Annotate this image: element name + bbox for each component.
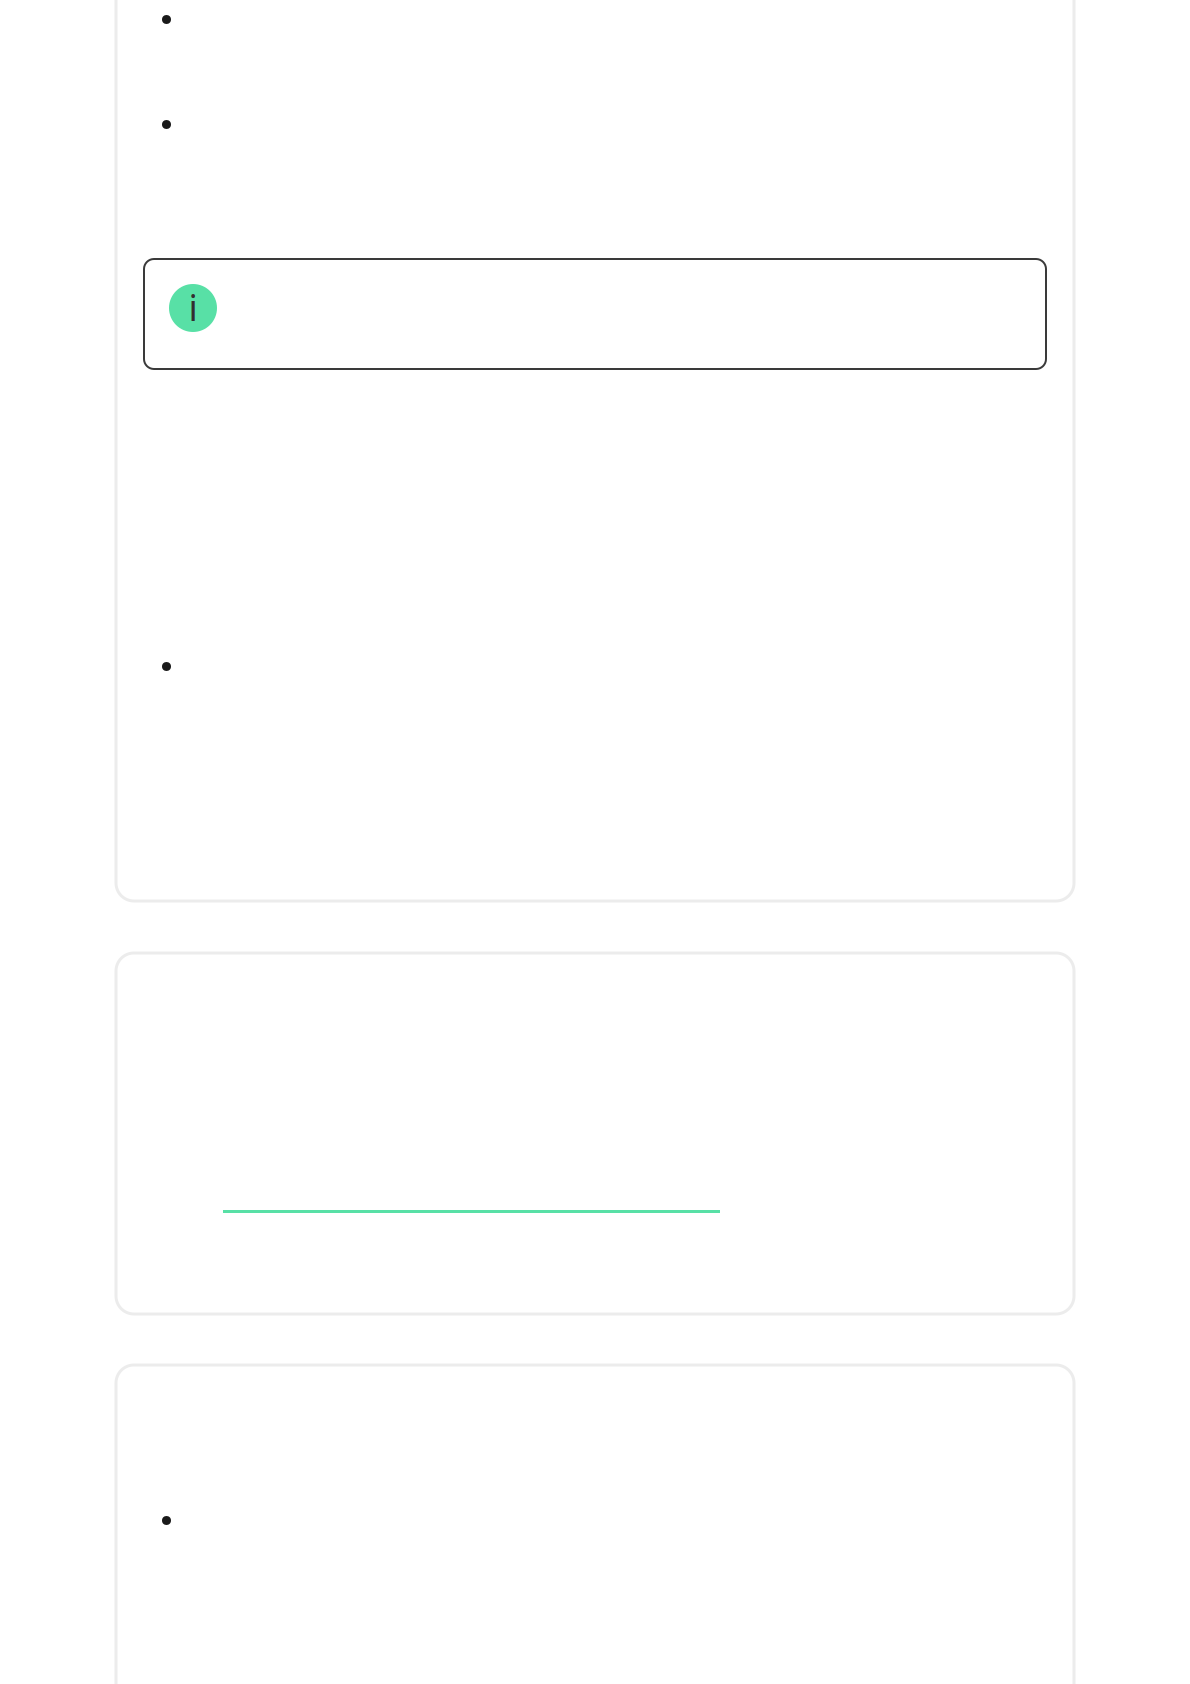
staticText: Learn more about this step <box>223 1187 664 1233</box>
staticText: i <box>188 283 197 331</box>
